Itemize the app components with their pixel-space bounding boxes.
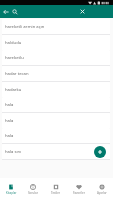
button[interactable]: Kitaplar	[0, 178, 22, 200]
staticText: hareketlu	[5, 55, 24, 61]
button[interactable]: Sorular	[22, 178, 44, 200]
staticText: hadarku	[5, 87, 22, 93]
button[interactable]: hala	[2, 113, 110, 128]
staticText: hala	[5, 118, 14, 124]
button[interactable]: hareketlu	[2, 50, 110, 65]
button[interactable]: Favoriler	[67, 178, 90, 200]
staticText: hareketli zemin açın	[5, 24, 45, 30]
button[interactable]: Back	[0, 5, 11, 18]
staticText: Ayarlar	[97, 191, 107, 195]
button[interactable]: hala	[2, 97, 110, 112]
staticText: Testler	[51, 191, 61, 195]
button[interactable]: Search	[9, 5, 20, 18]
staticText: Sorular	[28, 191, 38, 195]
button[interactable]: Add	[94, 146, 106, 158]
button[interactable]: hadarku	[2, 82, 110, 97]
button[interactable]: hala	[2, 128, 110, 143]
button[interactable]: haldudu	[2, 35, 110, 50]
staticText: Kitaplar	[6, 191, 17, 195]
staticText: hadar tecan	[5, 71, 29, 77]
button[interactable]: hadar tecan	[2, 66, 110, 81]
staticText: hala	[5, 102, 14, 108]
staticText: haldudu	[5, 40, 22, 46]
staticText: Favoriler	[73, 191, 85, 195]
button[interactable]: hala sını	[2, 144, 110, 159]
staticText: hala	[5, 133, 14, 139]
button[interactable]: Ayarlar	[90, 178, 113, 200]
button[interactable]: hareketli zemin açın	[2, 19, 110, 34]
button[interactable]: Testler	[44, 178, 67, 200]
staticText: hala sını	[5, 149, 22, 155]
button[interactable]: Close	[77, 5, 88, 18]
